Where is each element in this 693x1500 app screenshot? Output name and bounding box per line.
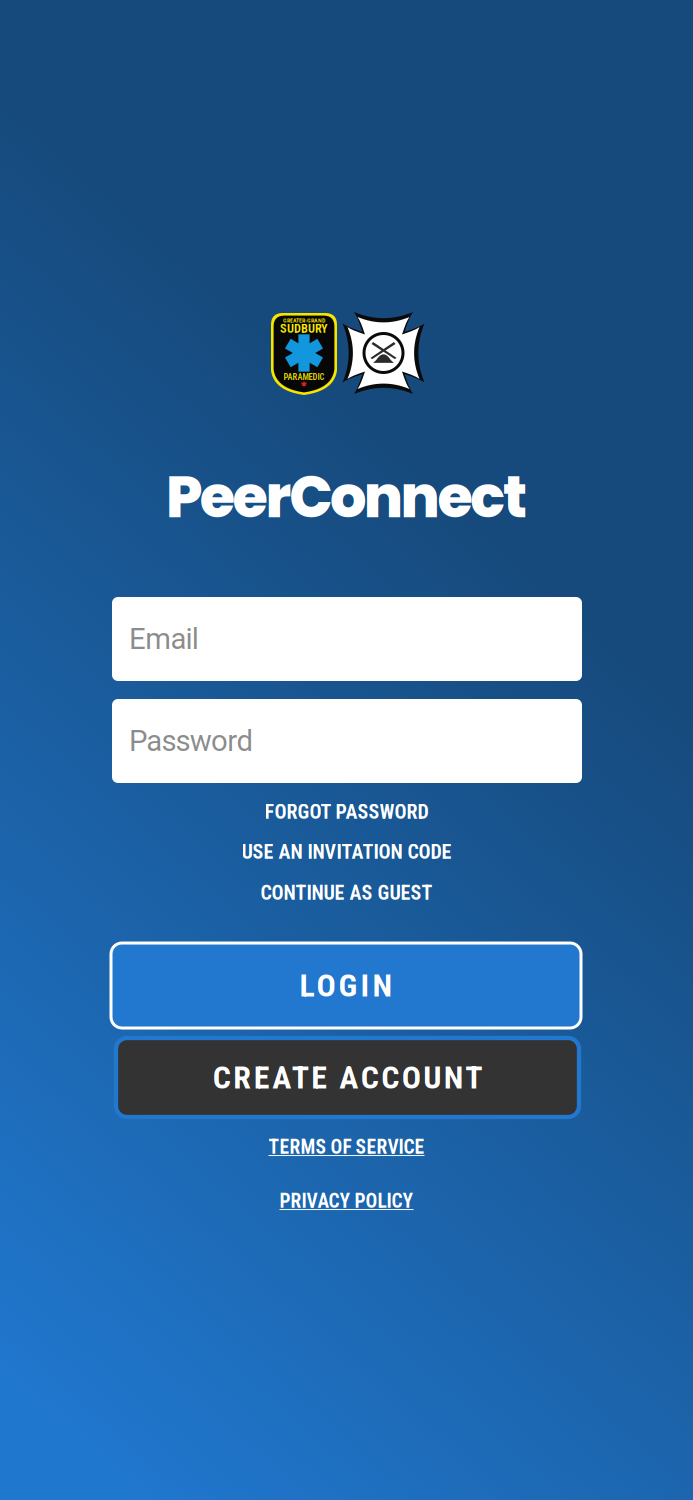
staticText: Password [129, 724, 253, 758]
button[interactable]: CONTINUE AS GUEST [0, 881, 693, 905]
staticText: CREATE ACCOUNT [213, 1059, 482, 1096]
staticText: CONTINUE AS GUEST [260, 881, 432, 905]
staticText: Email [129, 622, 199, 656]
staticText: LOGIN [299, 967, 392, 1004]
staticText: USE AN INVITATION CODE [241, 840, 451, 864]
staticText: SUDBURY [280, 321, 328, 336]
button[interactable]: Email [112, 597, 582, 681]
staticText: FORGOT PASSWORD [264, 800, 428, 824]
button[interactable]: LOGIN [111, 943, 581, 1028]
staticText: PARAMEDIC [283, 372, 324, 382]
button[interactable]: CREATE ACCOUNT [116, 1038, 579, 1117]
staticText: GREATER-GRAND [283, 317, 325, 324]
button[interactable]: FORGOT PASSWORD [0, 800, 693, 824]
button[interactable]: Password [112, 699, 582, 783]
staticText: PRIVACY POLICY [279, 1190, 413, 1212]
staticText: TERMS OF SERVICE [268, 1136, 424, 1158]
button[interactable]: TERMS OF SERVICE [0, 1135, 693, 1159]
button[interactable]: USE AN INVITATION CODE [0, 840, 693, 864]
staticText: PeerConnect [166, 457, 527, 537]
button[interactable]: PRIVACY POLICY [0, 1189, 693, 1213]
